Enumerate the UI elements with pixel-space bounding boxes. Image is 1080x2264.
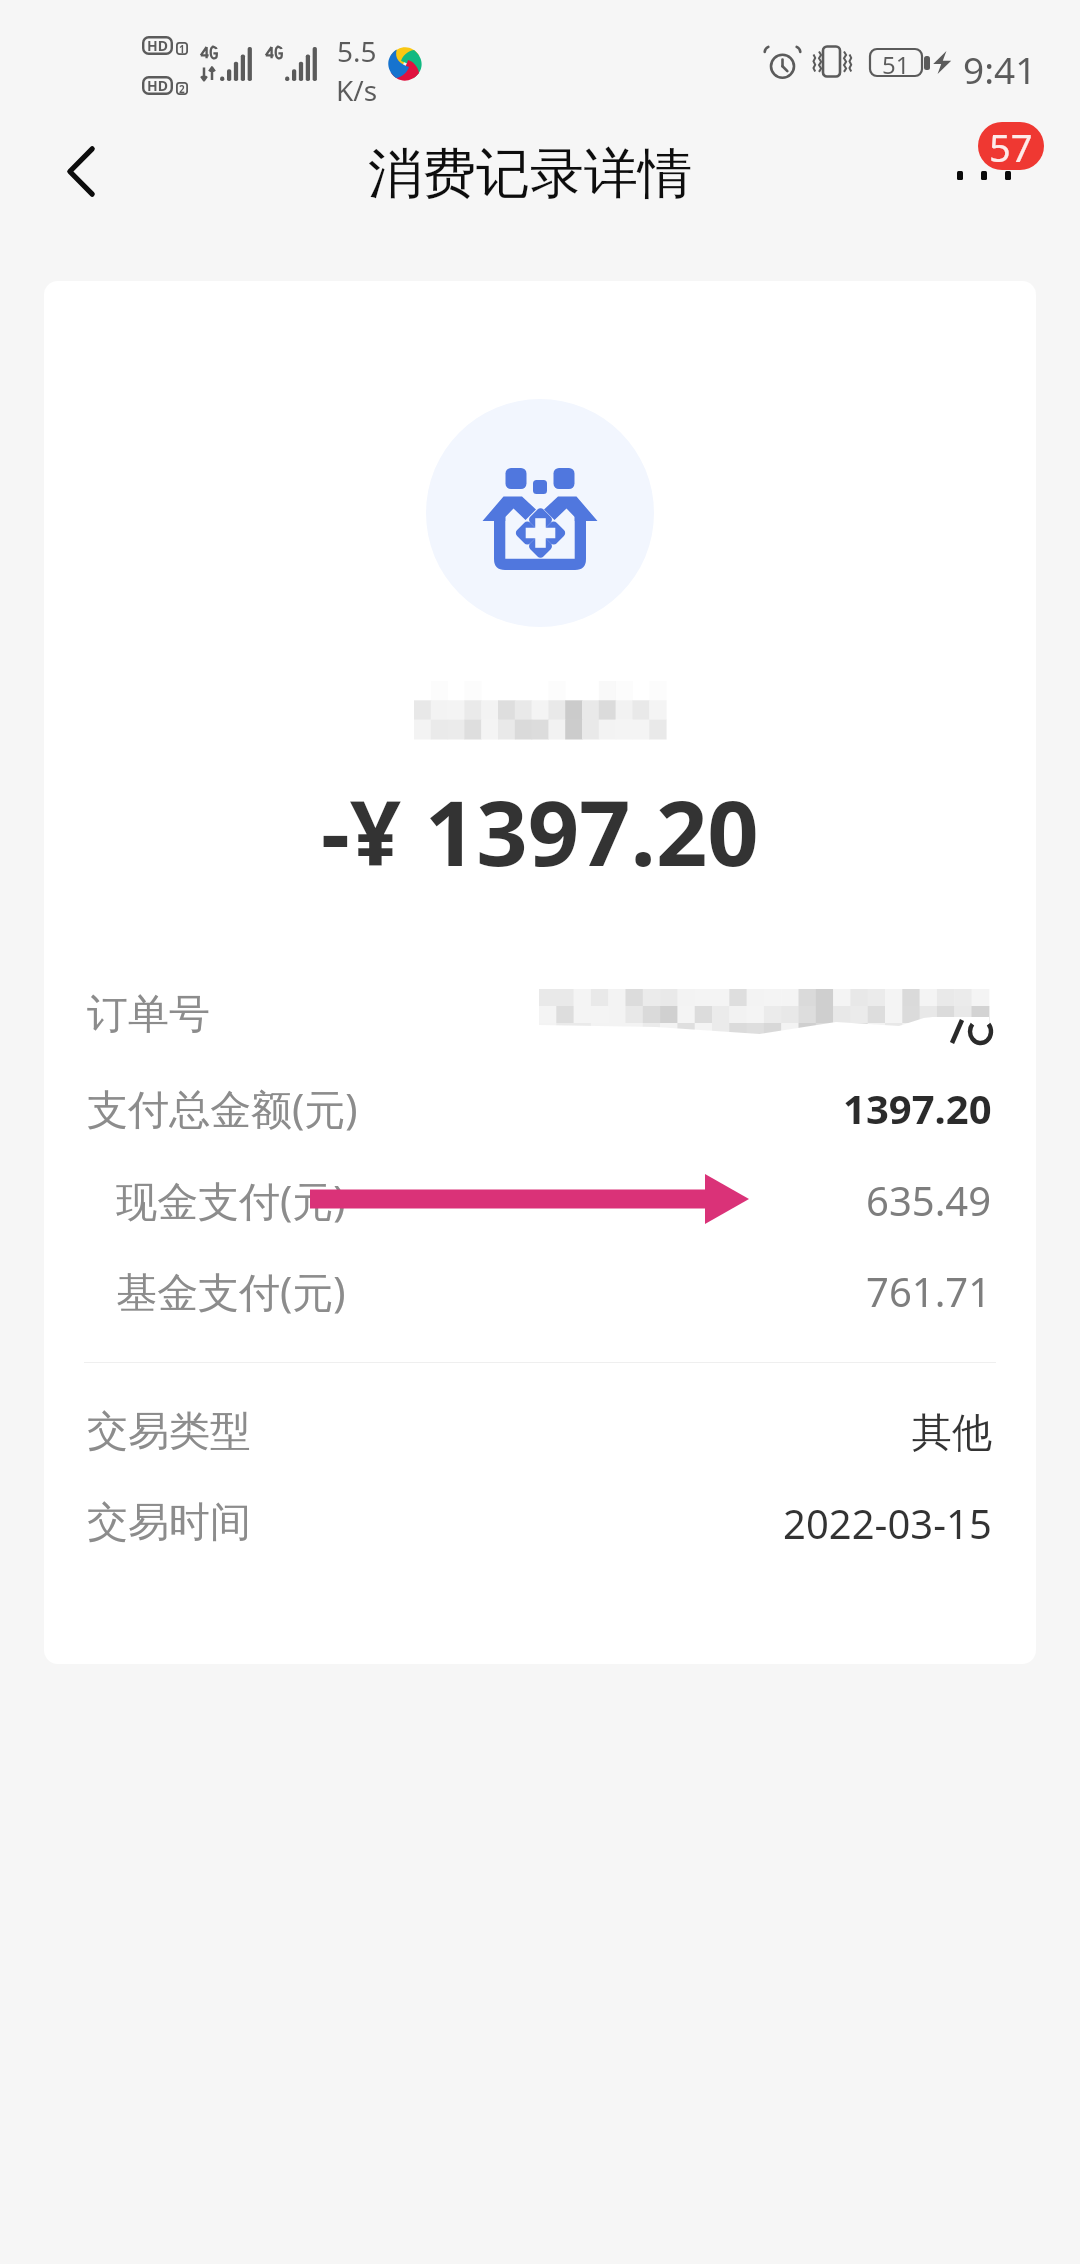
staticText: 1: [179, 42, 185, 55]
staticText: 635.49: [866, 1173, 992, 1227]
button[interactable]: Back: [28, 112, 138, 252]
staticText: 支付总金额(元): [87, 1080, 358, 1136]
staticText: 订单号: [87, 989, 210, 1041]
button[interactable]: 基金支付(元): [44, 1245, 1036, 1337]
button[interactable]: 订单号: [44, 969, 1036, 1061]
staticText: 交易类型: [87, 1406, 251, 1458]
button[interactable]: 交易时间: [44, 1477, 1036, 1569]
staticText: 现金支付(元): [116, 1172, 346, 1228]
button[interactable]: 交易类型: [44, 1386, 1036, 1478]
staticText: 2: [179, 82, 185, 95]
staticText: 9:41: [963, 44, 1037, 94]
staticText: 其他: [912, 1407, 992, 1457]
button[interactable]: 现金支付(元): [44, 1154, 1036, 1246]
staticText: 761.71: [866, 1264, 992, 1318]
staticText: 51: [882, 48, 910, 77]
staticText: 交易时间: [87, 1497, 251, 1549]
staticText: 消费记录详情: [368, 140, 692, 208]
staticText: HD: [147, 76, 168, 95]
staticText: HD: [147, 36, 168, 55]
button[interactable]: More options: [930, 112, 1080, 252]
staticText: -¥ 1397.20: [321, 770, 759, 893]
staticText: 5.5: [337, 32, 377, 70]
button[interactable]: 支付总金额(元): [44, 1062, 1036, 1154]
staticText: 2022-03-15: [783, 1496, 992, 1550]
staticText: 基金支付(元): [116, 1263, 346, 1319]
staticText: K/s: [336, 71, 378, 109]
staticText: 1397.20: [843, 1081, 992, 1135]
staticText: 57: [989, 122, 1033, 169]
